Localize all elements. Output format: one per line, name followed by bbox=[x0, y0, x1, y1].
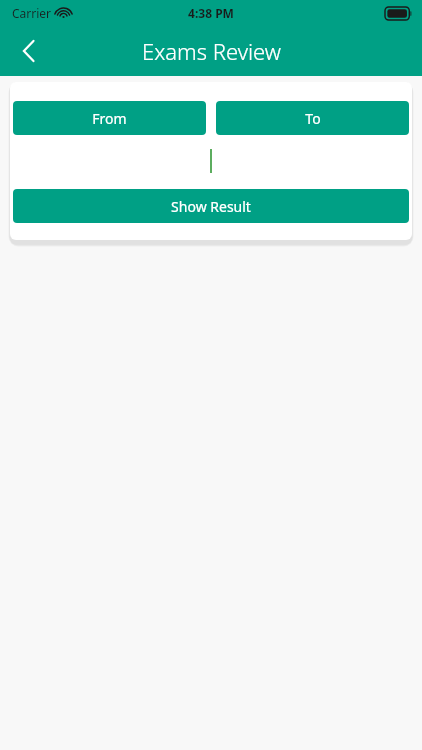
button[interactable]: Back bbox=[8, 30, 50, 72]
staticText: Exams Review bbox=[142, 36, 281, 66]
button[interactable]: Show Result bbox=[13, 189, 409, 223]
button[interactable]: To bbox=[216, 101, 409, 135]
staticText: Carrier bbox=[12, 5, 52, 21]
staticText: Show Result bbox=[171, 197, 251, 216]
button[interactable]: From bbox=[13, 101, 206, 135]
staticText: 4:38 PM bbox=[188, 5, 234, 21]
staticText: From bbox=[92, 109, 127, 128]
staticText: To bbox=[305, 109, 321, 128]
